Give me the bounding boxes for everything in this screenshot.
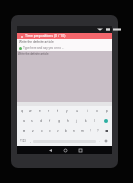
button[interactable]: a <box>20 116 28 126</box>
staticText: h <box>67 119 69 123</box>
staticText: k <box>85 119 87 123</box>
staticText: v <box>57 129 59 133</box>
button[interactable]: i <box>82 106 92 116</box>
button[interactable]: Home <box>61 146 69 154</box>
button[interactable]: x <box>37 126 46 136</box>
button[interactable]: Emoji <box>102 136 110 146</box>
staticText: j <box>76 119 77 123</box>
button[interactable]: v <box>54 126 62 136</box>
button[interactable]: g <box>54 116 63 126</box>
staticText: , <box>30 139 31 143</box>
button[interactable]: Back <box>46 146 54 154</box>
staticText: d <box>40 119 42 123</box>
staticText: m <box>81 129 84 133</box>
staticText: p <box>106 109 108 113</box>
button[interactable]: j <box>72 116 81 126</box>
staticText: f <box>49 119 51 123</box>
button[interactable]: d <box>36 116 45 126</box>
staticText: z <box>32 129 34 133</box>
button[interactable]: t <box>53 106 62 116</box>
staticText: r <box>48 109 50 113</box>
button[interactable]: o <box>92 106 102 116</box>
button[interactable]: ! <box>86 126 94 136</box>
staticText: g <box>58 119 60 123</box>
button[interactable]: r <box>44 106 53 116</box>
staticText: i <box>87 109 88 113</box>
button[interactable]: Backspace <box>102 126 110 136</box>
staticText: y <box>66 109 68 113</box>
button[interactable]: Shift <box>19 126 28 136</box>
staticText: ! <box>90 129 91 133</box>
button[interactable]: q <box>17 106 26 116</box>
staticText: w <box>29 109 32 113</box>
staticText: t <box>57 109 59 113</box>
staticText: u <box>76 109 78 113</box>
staticText: c <box>49 129 51 133</box>
staticText: o <box>96 109 98 113</box>
button[interactable]: w <box>26 106 35 116</box>
button[interactable]: c <box>46 126 54 136</box>
button[interactable]: e <box>35 106 44 116</box>
button[interactable]: ?123 <box>19 136 27 146</box>
button[interactable]: Recent apps <box>76 146 84 154</box>
button[interactable]: , <box>27 136 33 146</box>
staticText: Time prepositions (0 / 10) <box>25 34 66 38</box>
button[interactable]: k <box>81 116 90 126</box>
button[interactable]: ? <box>94 126 102 136</box>
button[interactable]: y <box>62 106 72 116</box>
staticText: l <box>94 119 95 123</box>
button[interactable]: s <box>28 116 36 126</box>
staticText: q <box>21 109 23 113</box>
staticText: n <box>73 129 75 133</box>
button[interactable]: n <box>70 126 78 136</box>
staticText: Type here and say yes or no ... <box>23 46 65 50</box>
button[interactable]: l <box>90 116 99 126</box>
staticText: ?123 <box>20 140 26 143</box>
staticText: s <box>31 119 33 123</box>
button[interactable]: m <box>78 126 86 136</box>
button[interactable]: p <box>102 106 112 116</box>
staticText: ? <box>97 129 99 133</box>
staticText: Write the definite article <box>18 52 49 55</box>
button[interactable]: Close <box>19 34 24 39</box>
staticText: b <box>65 129 67 133</box>
button[interactable]: h <box>63 116 72 126</box>
button[interactable]: u <box>72 106 82 116</box>
button[interactable]: f <box>45 116 54 126</box>
button[interactable]: b <box>62 126 70 136</box>
staticText: Write the definite article <box>19 40 54 44</box>
button[interactable]: z <box>28 126 37 136</box>
staticText: e <box>39 109 41 113</box>
staticText: . <box>99 139 100 143</box>
staticText: x <box>41 129 43 133</box>
button[interactable]: Enter <box>99 116 112 126</box>
staticText: a <box>23 119 25 123</box>
